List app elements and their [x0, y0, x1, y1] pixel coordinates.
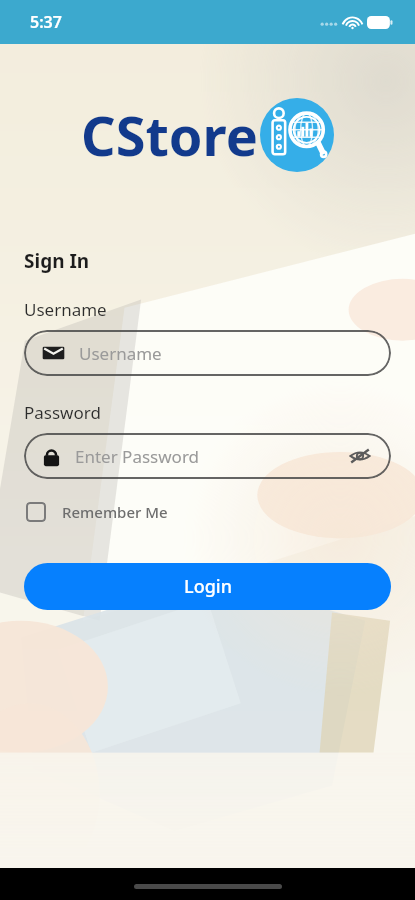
staticText: Username [24, 298, 107, 321]
staticText: Username [79, 342, 373, 365]
staticText: Password [24, 401, 101, 424]
staticText: Remember Me [62, 502, 168, 522]
button[interactable]: Username input [24, 330, 391, 376]
staticText: Login [184, 574, 232, 599]
staticText: CStore [81, 98, 258, 172]
button[interactable]: Show password [347, 443, 373, 469]
staticText: 5:37 [30, 11, 62, 33]
button[interactable]: Login [24, 563, 391, 610]
button[interactable]: Remember Me [24, 498, 170, 526]
staticText: Enter Password [75, 445, 337, 468]
staticText: Sign In [24, 248, 90, 274]
button[interactable]: Password input [24, 433, 391, 479]
